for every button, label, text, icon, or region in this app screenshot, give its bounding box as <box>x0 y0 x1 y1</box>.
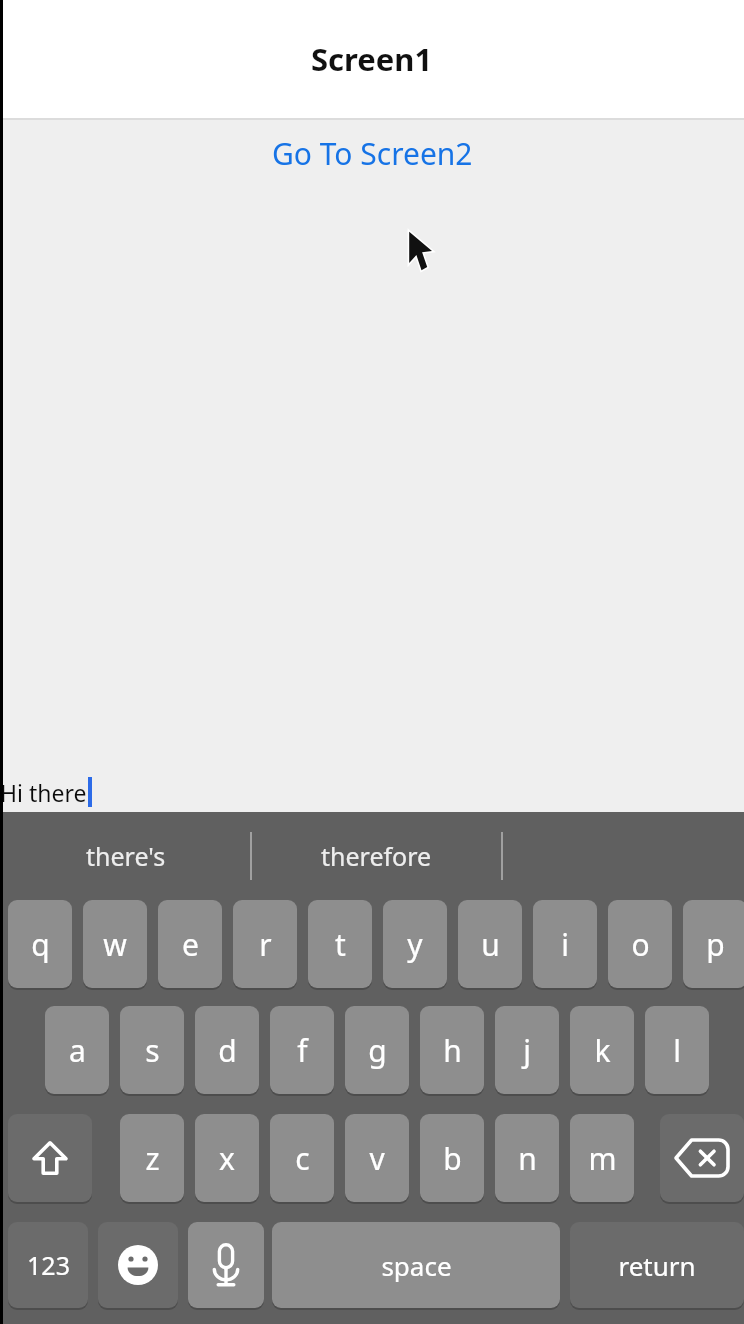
staticText: z <box>145 1138 160 1179</box>
button[interactable]: Backspace <box>660 1114 744 1202</box>
button[interactable]: Voice input <box>188 1222 264 1308</box>
button[interactable]: return <box>570 1222 744 1308</box>
button[interactable]: r <box>233 900 297 988</box>
staticText: j <box>523 1030 531 1071</box>
staticText: s <box>145 1030 160 1071</box>
staticText: v <box>369 1138 385 1179</box>
staticText: therefore <box>321 839 432 873</box>
staticText: b <box>443 1138 462 1179</box>
staticText: u <box>481 924 500 965</box>
button[interactable]: u <box>458 900 522 988</box>
button[interactable]: e <box>158 900 222 988</box>
button[interactable]: there's <box>0 812 251 900</box>
button[interactable]: l <box>645 1006 709 1094</box>
button[interactable]: z <box>120 1114 184 1202</box>
staticText: e <box>182 924 199 965</box>
button[interactable]: y <box>383 900 447 988</box>
button[interactable]: b <box>420 1114 484 1202</box>
button[interactable]: a <box>45 1006 109 1094</box>
staticText: k <box>594 1030 611 1071</box>
button[interactable]: m <box>570 1114 634 1202</box>
button[interactable]: Emoji <box>98 1222 178 1308</box>
staticText: d <box>218 1030 237 1071</box>
staticText: x <box>219 1138 235 1179</box>
button[interactable]: j <box>495 1006 559 1094</box>
button[interactable]: n <box>495 1114 559 1202</box>
button[interactable]: q <box>8 900 72 988</box>
staticText: c <box>295 1138 310 1179</box>
button[interactable]: w <box>83 900 147 988</box>
button[interactable]: k <box>570 1006 634 1094</box>
staticText: n <box>518 1138 537 1179</box>
button[interactable]: Go To Screen2 <box>0 120 744 186</box>
staticText: a <box>69 1030 86 1071</box>
staticText: m <box>588 1138 617 1179</box>
staticText: f <box>297 1030 308 1071</box>
button[interactable]: t <box>308 900 372 988</box>
button[interactable]: v <box>345 1114 409 1202</box>
button[interactable]: g <box>345 1006 409 1094</box>
staticText: h <box>443 1030 462 1071</box>
staticText: Go To Screen2 <box>272 133 473 174</box>
button[interactable]: i <box>533 900 597 988</box>
staticText: y <box>407 924 423 965</box>
button[interactable]: o <box>608 900 672 988</box>
button[interactable]: Hi there <box>0 772 744 812</box>
button[interactable]: f <box>270 1006 334 1094</box>
staticText: space <box>381 1248 452 1283</box>
staticText: q <box>31 924 50 965</box>
staticText: r <box>259 924 272 965</box>
staticText: l <box>673 1030 681 1071</box>
button[interactable]: x <box>195 1114 259 1202</box>
staticText: w <box>103 924 127 965</box>
button[interactable]: c <box>270 1114 334 1202</box>
button[interactable]: 123 <box>8 1222 88 1308</box>
button[interactable]: s <box>120 1006 184 1094</box>
button[interactable]: space <box>272 1222 560 1308</box>
staticText: i <box>561 924 569 965</box>
staticText: return <box>618 1248 696 1283</box>
staticText: o <box>631 924 650 965</box>
button[interactable]: d <box>195 1006 259 1094</box>
button[interactable]: h <box>420 1006 484 1094</box>
staticText: there's <box>86 839 166 873</box>
staticText: g <box>368 1030 387 1071</box>
staticText: Hi there <box>0 777 87 808</box>
staticText: 123 <box>27 1248 70 1282</box>
staticText: t <box>335 924 346 965</box>
staticText: p <box>706 924 725 965</box>
button[interactable]: Shift <box>8 1114 92 1202</box>
button[interactable]: therefore <box>251 812 502 900</box>
staticText: Screen1 <box>311 38 433 80</box>
button[interactable]: p <box>683 900 744 988</box>
